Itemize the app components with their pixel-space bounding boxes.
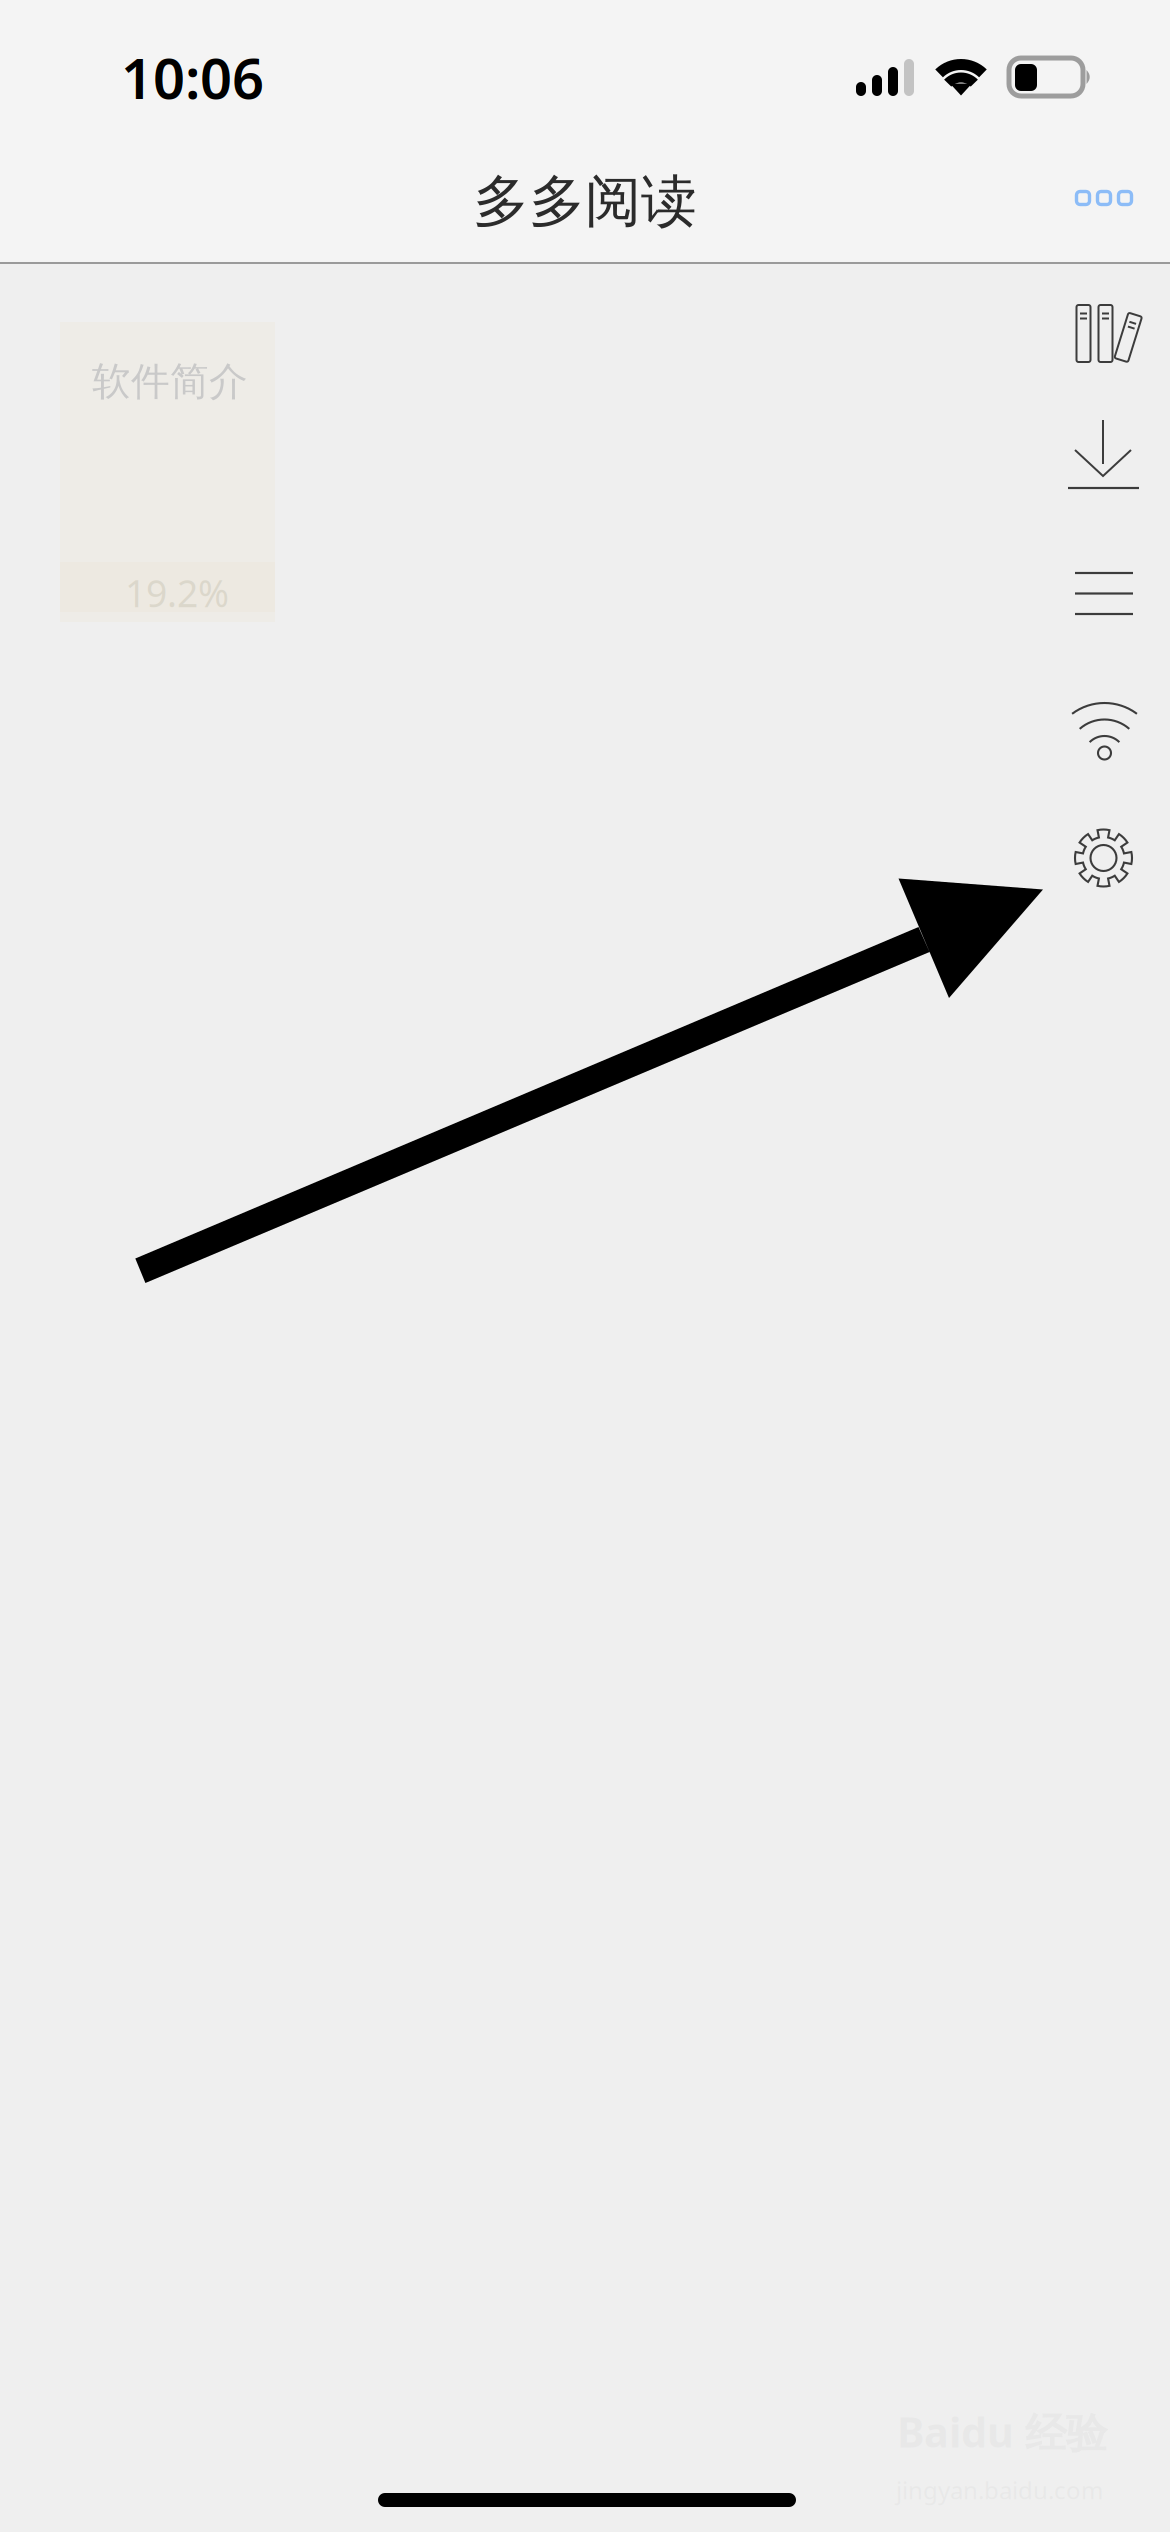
staticText: 10:06	[121, 40, 264, 114]
button[interactable]: Listen	[0, 0, 1170, 2532]
button[interactable]: Menu	[0, 0, 1170, 2532]
staticText: 多多阅读	[473, 167, 697, 236]
staticText: 软件简介	[92, 358, 248, 405]
button[interactable]: Bookshelf	[0, 0, 1170, 2532]
button[interactable]: Downloads	[0, 0, 1170, 2532]
button[interactable]: More	[1066, 151, 1166, 241]
button[interactable]: Settings	[0, 0, 1170, 2532]
staticText: Baidu 经验	[897, 2404, 1107, 2459]
button[interactable]: 软件简介	[60, 322, 275, 622]
staticText: 19.2%	[125, 568, 229, 618]
